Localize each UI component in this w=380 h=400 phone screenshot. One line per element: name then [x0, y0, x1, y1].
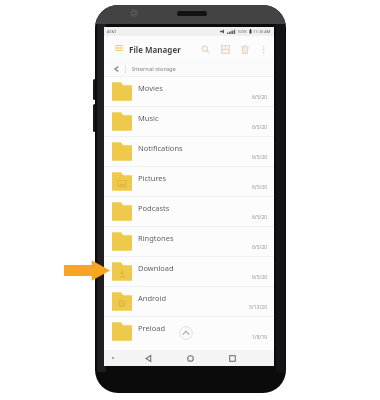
staticText: Preload: [138, 323, 166, 333]
button[interactable]: Ringtones: [104, 226, 274, 256]
staticText: 100%: [237, 29, 248, 34]
staticText: 6/5/20: [252, 124, 268, 131]
button[interactable]: More options: [255, 39, 271, 59]
staticText: Android: [138, 293, 167, 303]
button[interactable]: Search: [195, 39, 215, 59]
staticText: 6/5/20: [252, 214, 268, 221]
staticText: Podcasts: [138, 203, 170, 213]
button[interactable]: Home: [182, 350, 198, 366]
staticText: Notifications: [138, 143, 183, 153]
staticText: Ringtones: [138, 233, 174, 243]
staticText: 11:30 AM: [253, 29, 271, 34]
staticText: Download: [138, 263, 174, 273]
button[interactable]: Podcasts: [104, 196, 274, 226]
button[interactable]: Download: [104, 256, 274, 286]
staticText: Pictures: [138, 173, 167, 183]
button[interactable]: Pictures: [104, 166, 274, 196]
staticText: 5/13/20: [249, 304, 268, 311]
staticText: Internal storage: [132, 65, 176, 73]
button[interactable]: Android: [104, 286, 274, 316]
staticText: 6/5/20: [252, 274, 268, 281]
staticText: AT&T: [107, 29, 117, 34]
button[interactable]: Notifications: [104, 136, 274, 166]
staticText: 6/5/20: [252, 184, 268, 191]
staticText: Movies: [138, 83, 163, 93]
button[interactable]: Preload: [104, 316, 274, 346]
staticText: 6/5/20: [252, 244, 268, 251]
button[interactable]: Switch view: [215, 39, 235, 59]
staticText: 6/5/20: [252, 94, 268, 101]
staticText: 6/5/20: [252, 154, 268, 161]
button[interactable]: Movies: [104, 76, 274, 106]
staticText: Music: [138, 113, 159, 123]
button[interactable]: Music: [104, 106, 274, 136]
button[interactable]: Recent apps: [224, 350, 240, 366]
button[interactable]: Back: [140, 350, 156, 366]
staticText: File Manager: [129, 44, 181, 55]
button[interactable]: Delete: [235, 39, 255, 59]
staticText: 1/8/19: [252, 334, 268, 341]
button[interactable]: Open navigation menu: [113, 38, 125, 56]
button[interactable]: Scroll to top: [179, 326, 193, 340]
